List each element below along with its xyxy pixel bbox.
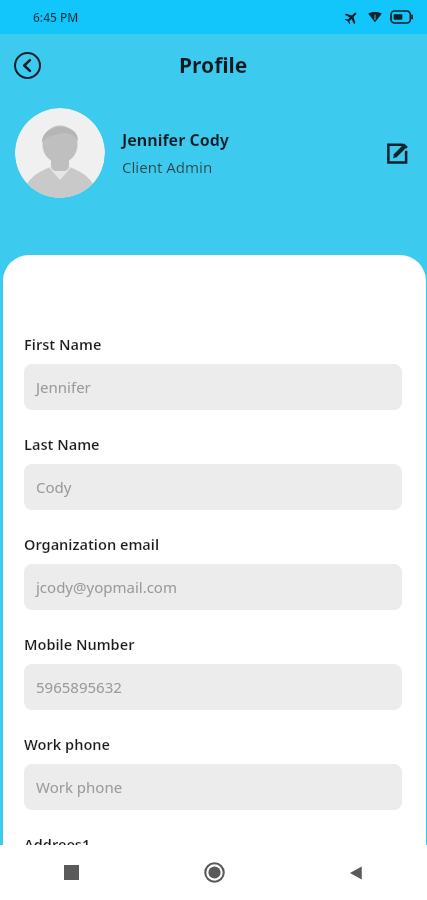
staticText: Mobile Number xyxy=(24,634,135,654)
staticText: Organization email xyxy=(24,534,160,554)
staticText: jcody@yopmail.com xyxy=(36,577,177,597)
staticText: First Name xyxy=(24,334,102,354)
button[interactable]: Recent apps xyxy=(0,845,143,900)
button[interactable]: 5965895632 xyxy=(24,664,402,710)
staticText: Profile xyxy=(179,51,248,80)
button[interactable]: jcody@yopmail.com xyxy=(24,564,402,610)
staticText: Client Admin xyxy=(122,157,213,177)
staticText: 5965895632 xyxy=(36,677,122,697)
button[interactable]: Jennifer xyxy=(24,364,402,410)
button[interactable]: Home xyxy=(143,845,285,900)
button[interactable]: Back xyxy=(12,50,42,80)
button[interactable]: Cody xyxy=(24,464,402,510)
staticText: Addrees1 xyxy=(24,834,91,845)
staticText: 6:45 PM xyxy=(33,9,79,25)
button[interactable]: Back xyxy=(285,845,427,900)
button[interactable]: Edit profile xyxy=(381,137,413,169)
staticText: Jennifer Cody xyxy=(122,129,230,151)
staticText: Work phone xyxy=(36,777,123,797)
button[interactable]: Work phone xyxy=(24,764,402,810)
staticText: Cody xyxy=(36,477,72,497)
staticText: Last Name xyxy=(24,434,100,454)
staticText: Jennifer xyxy=(36,377,91,397)
staticText: Work phone xyxy=(24,734,111,754)
